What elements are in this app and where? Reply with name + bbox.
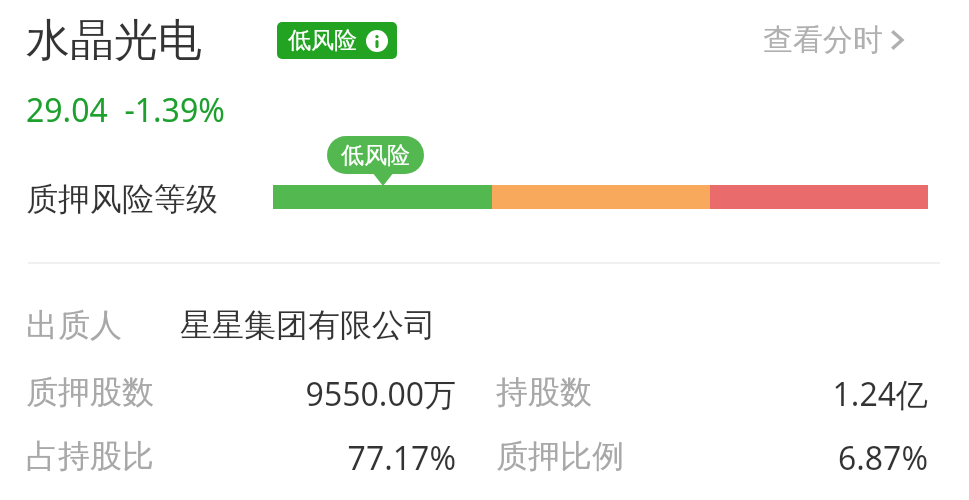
button[interactable]: 质押股数 — [0, 366, 969, 426]
staticText: 查看分时 — [763, 21, 883, 59]
staticText: 29.04 -1.39% — [26, 88, 225, 132]
staticText: 占持股比 — [26, 436, 154, 476]
staticText: 出质人 — [26, 305, 122, 345]
staticText: 6.87% — [670, 436, 928, 480]
staticText: 持股数 — [496, 372, 592, 412]
button[interactable]: 出质人 — [0, 298, 969, 360]
button[interactable]: 低风险 — [277, 22, 397, 59]
staticText: 质押比例 — [496, 436, 624, 476]
staticText: 1.24亿 — [670, 372, 928, 416]
staticText: 低风险 — [288, 26, 357, 55]
staticText: 水晶光电 — [26, 13, 202, 68]
button[interactable]: 低风险 — [327, 136, 424, 174]
staticText: 9550.00万 — [200, 372, 456, 416]
staticText: 质押风险等级 — [26, 179, 218, 219]
staticText: 质押股数 — [26, 372, 154, 412]
staticText: 星星集团有限公司 — [180, 305, 436, 345]
button[interactable]: 查看分时 — [757, 16, 911, 64]
staticText: 77.17% — [200, 436, 456, 480]
button[interactable]: 占持股比 — [0, 430, 969, 490]
staticText: 低风险 — [341, 141, 410, 170]
other: Risk level info — [366, 30, 388, 52]
